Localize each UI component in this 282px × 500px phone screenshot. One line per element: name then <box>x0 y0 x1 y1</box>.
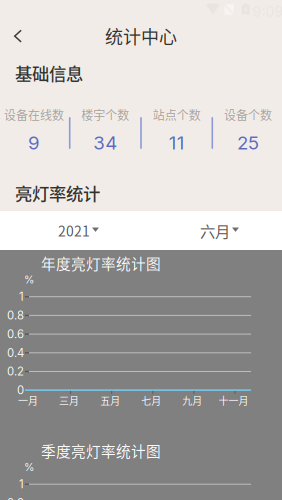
staticText: 1 <box>19 477 24 491</box>
staticText: 年度亮灯率统计图 <box>41 252 161 274</box>
staticText: 0.8 <box>7 308 24 322</box>
staticText: 亮灯率统计 <box>15 180 100 206</box>
staticText: 九月 <box>182 393 202 408</box>
staticText: 0.8 <box>7 496 24 500</box>
staticText: 七月 <box>141 393 161 408</box>
staticText: 五月 <box>100 393 120 408</box>
button[interactable]: 六月 <box>141 211 282 250</box>
staticText: 2021 <box>58 220 90 241</box>
staticText: 0.6 <box>7 327 24 341</box>
staticText: 季度亮灯率统计图 <box>41 440 161 461</box>
staticText: 统计中心 <box>105 23 177 49</box>
staticText: 0.4 <box>7 346 24 360</box>
staticText: 25 <box>237 131 259 154</box>
staticText: 六月 <box>200 219 230 242</box>
staticText: 9 <box>28 131 40 154</box>
staticText: 1 <box>19 290 24 303</box>
staticText: % <box>24 460 34 473</box>
staticText: 11 <box>169 131 185 154</box>
staticText: 0.2 <box>7 365 24 378</box>
staticText: 十一月 <box>218 393 248 408</box>
staticText: 34 <box>93 131 117 154</box>
staticText: 设备个数 <box>224 106 272 123</box>
button[interactable]: Back <box>0 22 36 50</box>
staticText: 设备在线数 <box>4 106 64 123</box>
staticText: % <box>24 273 34 286</box>
staticText: 楼宇个数 <box>81 106 129 123</box>
staticText: 基础信息 <box>15 60 83 86</box>
staticText: 0 <box>17 383 24 397</box>
staticText: 站点个数 <box>153 106 201 123</box>
staticText: 一月 <box>18 393 38 408</box>
staticText: 三月 <box>59 393 79 408</box>
button[interactable]: 2021 <box>0 211 141 250</box>
